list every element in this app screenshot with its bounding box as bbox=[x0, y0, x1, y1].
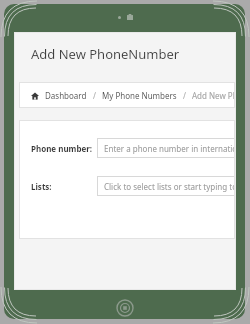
staticText: Add New PhoneNumber bbox=[31, 45, 180, 63]
staticText: / bbox=[93, 90, 96, 101]
staticText: Click to select lists or start typing to… bbox=[104, 181, 235, 192]
staticText: Lists: bbox=[31, 181, 52, 192]
staticText: Dashboard bbox=[45, 90, 87, 101]
staticText: Add New PhoneNumber bbox=[192, 90, 235, 101]
button[interactable]: Enter a phone number in international fo… bbox=[97, 138, 235, 158]
staticText: My Phone Numbers bbox=[102, 90, 177, 101]
button[interactable]: Click to select lists or start typing to… bbox=[97, 176, 235, 196]
staticText: / bbox=[183, 90, 186, 101]
button[interactable]: Dashboard bbox=[45, 90, 87, 101]
staticText: Enter a phone number in international fo… bbox=[104, 143, 235, 154]
button[interactable]: Home bbox=[115, 298, 135, 318]
button[interactable]: My Phone Numbers bbox=[102, 90, 177, 101]
staticText: Phone number: bbox=[31, 143, 93, 154]
